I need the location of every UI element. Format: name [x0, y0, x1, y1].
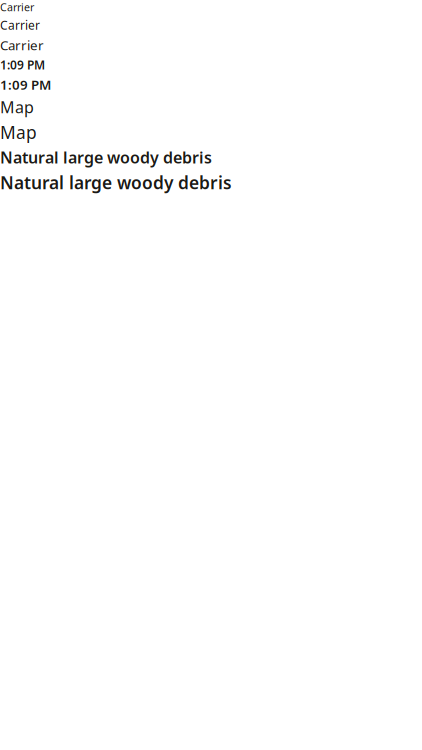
staticText: 1:09 PM — [0, 57, 45, 73]
staticText: Map — [0, 96, 34, 118]
staticText: Carrier — [0, 36, 44, 54]
staticText: Carrier — [0, 0, 34, 14]
staticText: 1:09 PM — [0, 76, 51, 93]
staticText: Natural large woody debris — [0, 171, 232, 194]
staticText: Carrier — [0, 17, 40, 33]
staticText: Map — [0, 121, 37, 144]
staticText: Natural large woody debris — [0, 147, 212, 168]
